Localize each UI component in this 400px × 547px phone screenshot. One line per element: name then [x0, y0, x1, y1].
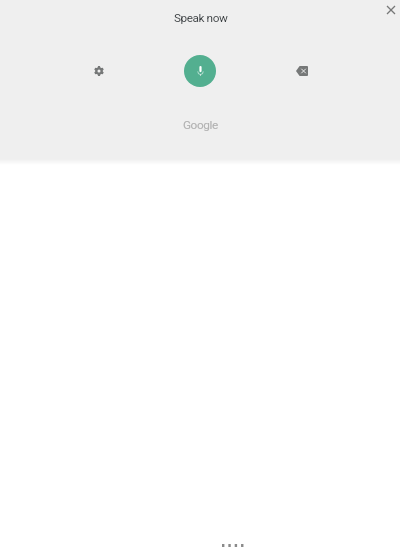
- staticText: Speak now: [174, 11, 228, 25]
- button[interactable]: Microphone: [184, 55, 216, 87]
- button[interactable]: Voice search settings: [83, 55, 115, 87]
- button[interactable]: Close: [380, 0, 400, 20]
- staticText: Google: [183, 118, 218, 132]
- button[interactable]: Backspace: [286, 55, 318, 87]
